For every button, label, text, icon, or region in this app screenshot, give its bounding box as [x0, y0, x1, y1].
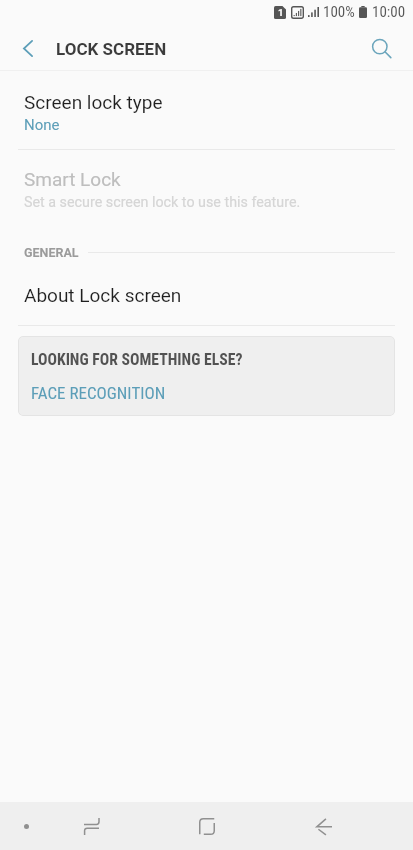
- staticText: LOOKING FOR SOMETHING ELSE?: [31, 350, 243, 368]
- staticText: Screen lock type: [24, 91, 163, 113]
- button[interactable]: Recent apps: [67, 802, 115, 850]
- button[interactable]: FACE RECOGNITION: [31, 383, 166, 403]
- staticText: 10:00: [372, 3, 406, 21]
- staticText: Set a secure screen lock to use this fea…: [24, 194, 301, 211]
- staticText: GENERAL: [24, 245, 79, 260]
- button[interactable]: Navigate up: [0, 24, 51, 71]
- button[interactable]: About Lock screen: [0, 284, 413, 306]
- button[interactable]: Smart Lock: [0, 168, 413, 211]
- staticText: 100%: [323, 3, 355, 21]
- button[interactable]: Hide keyboard: [7, 807, 45, 845]
- button[interactable]: Search: [363, 24, 413, 71]
- staticText: FACE RECOGNITION: [31, 383, 166, 403]
- staticText: About Lock screen: [24, 284, 182, 306]
- staticText: None: [24, 116, 60, 134]
- button[interactable]: Home: [183, 802, 231, 850]
- staticText: 1: [278, 7, 284, 18]
- button[interactable]: Back: [300, 802, 348, 850]
- staticText: LOCK SCREEN: [56, 39, 167, 59]
- staticText: Smart Lock: [24, 168, 121, 190]
- button[interactable]: Screen lock type: [0, 91, 413, 134]
